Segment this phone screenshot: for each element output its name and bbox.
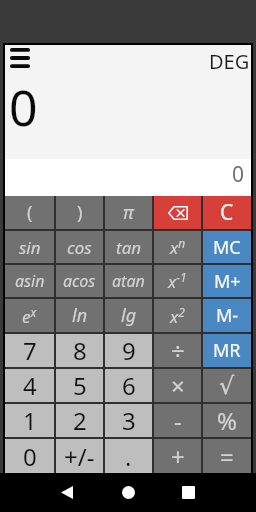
staticText: tan	[116, 236, 142, 259]
button[interactable]: Backspace	[154, 196, 201, 229]
button[interactable]: ×	[154, 369, 201, 402]
button[interactable]: Back	[45, 473, 89, 512]
button[interactable]: x2	[154, 299, 201, 332]
button[interactable]: )	[56, 196, 103, 229]
button[interactable]: 9	[105, 334, 152, 367]
staticText: 4	[23, 369, 37, 402]
staticText: ×	[171, 369, 185, 402]
button[interactable]: √	[203, 369, 251, 402]
button[interactable]: C	[203, 196, 251, 229]
button[interactable]: .	[105, 439, 152, 473]
button[interactable]: xn	[154, 231, 201, 263]
button[interactable]: 2	[56, 404, 103, 437]
button[interactable]: 3	[105, 404, 152, 437]
staticText: π	[123, 200, 134, 225]
button[interactable]: Recents	[166, 473, 210, 512]
staticText: DEG	[209, 48, 250, 75]
button[interactable]: M+	[203, 265, 251, 297]
button[interactable]: MR	[203, 334, 251, 367]
staticText: 3	[122, 404, 136, 437]
staticText: acos	[63, 270, 96, 292]
staticText: 0	[23, 440, 37, 473]
button[interactable]: asin	[5, 265, 54, 297]
staticText: x2	[170, 304, 185, 328]
staticText: 2	[73, 404, 87, 437]
staticText: (	[27, 200, 33, 225]
button[interactable]: 5	[56, 369, 103, 402]
button[interactable]: (	[5, 196, 54, 229]
button[interactable]: Menu	[7, 45, 33, 71]
staticText: 9	[122, 334, 136, 367]
button[interactable]: 4	[5, 369, 54, 402]
staticText: MR	[213, 338, 241, 363]
staticText: cos	[67, 236, 92, 259]
button[interactable]: -	[154, 404, 201, 437]
staticText: ln	[72, 303, 88, 328]
staticText: %	[217, 404, 237, 437]
button[interactable]: tan	[105, 231, 152, 263]
staticText: +	[171, 440, 185, 473]
button[interactable]: cos	[56, 231, 103, 263]
staticText: )	[77, 200, 83, 225]
staticText: ex	[22, 304, 37, 328]
staticText: 8	[73, 334, 87, 367]
staticText: ÷	[171, 334, 185, 367]
staticText: asin	[15, 270, 45, 292]
button[interactable]: x-1	[154, 265, 201, 297]
button[interactable]: MC	[203, 231, 251, 263]
staticText: =	[220, 440, 234, 473]
button[interactable]: 8	[56, 334, 103, 367]
button[interactable]: =	[203, 439, 251, 473]
staticText: C	[220, 198, 234, 227]
staticText: 0	[232, 160, 245, 189]
staticText: -	[174, 404, 182, 437]
button[interactable]: 6	[105, 369, 152, 402]
button[interactable]: 1	[5, 404, 54, 437]
button[interactable]: π	[105, 196, 152, 229]
button[interactable]: lg	[105, 299, 152, 332]
button[interactable]: 7	[5, 334, 54, 367]
staticText: 1	[23, 404, 37, 437]
button[interactable]: atan	[105, 265, 152, 297]
button[interactable]: 0	[5, 439, 54, 473]
button[interactable]: ex	[5, 299, 54, 332]
button[interactable]: %	[203, 404, 251, 437]
staticText: lg	[121, 303, 137, 328]
staticText: 6	[122, 369, 136, 402]
button[interactable]: +	[154, 439, 201, 473]
staticText: M-	[216, 303, 239, 328]
staticText: .	[125, 440, 132, 473]
button[interactable]: ln	[56, 299, 103, 332]
staticText: 7	[23, 334, 37, 367]
staticText: M+	[214, 269, 241, 294]
button[interactable]: +/-	[56, 439, 103, 473]
button[interactable]: M-	[203, 299, 251, 332]
staticText: sin	[19, 236, 41, 259]
button[interactable]: sin	[5, 231, 54, 263]
staticText: 0	[9, 73, 38, 141]
staticText: xn	[170, 235, 186, 259]
button[interactable]: acos	[56, 265, 103, 297]
staticText: x-1	[168, 269, 187, 293]
staticText: √	[219, 372, 235, 400]
staticText: MC	[213, 235, 241, 260]
staticText: atan	[112, 270, 145, 292]
button[interactable]: Home	[106, 473, 150, 512]
staticText: 5	[73, 369, 87, 402]
button[interactable]: ÷	[154, 334, 201, 367]
staticText: +/-	[64, 440, 95, 473]
